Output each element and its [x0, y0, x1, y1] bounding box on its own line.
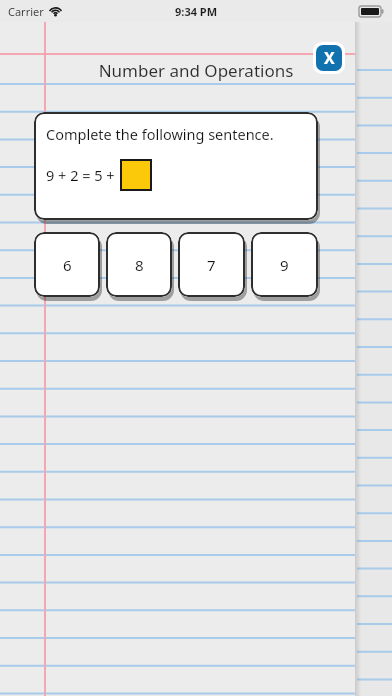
staticText: 9 + 2 = 5 +	[46, 165, 115, 185]
staticText: Complete the following sentence.	[46, 124, 274, 144]
staticText: 6	[63, 255, 72, 275]
staticText: 9:34 PM	[175, 4, 218, 19]
button[interactable]: 8	[106, 232, 172, 297]
staticText: 9	[280, 255, 289, 275]
staticText: 7	[207, 255, 216, 275]
button[interactable]: 6	[34, 232, 100, 297]
staticText: X	[324, 47, 335, 69]
button[interactable]: Close	[316, 45, 342, 71]
staticText: 8	[135, 255, 144, 275]
staticText: Number and Operations	[0, 59, 392, 82]
button[interactable]: 9	[251, 232, 318, 297]
button[interactable]: Complete the following sentence.	[34, 112, 318, 220]
button[interactable]: 7	[178, 232, 245, 297]
staticText: Carrier	[8, 4, 44, 19]
